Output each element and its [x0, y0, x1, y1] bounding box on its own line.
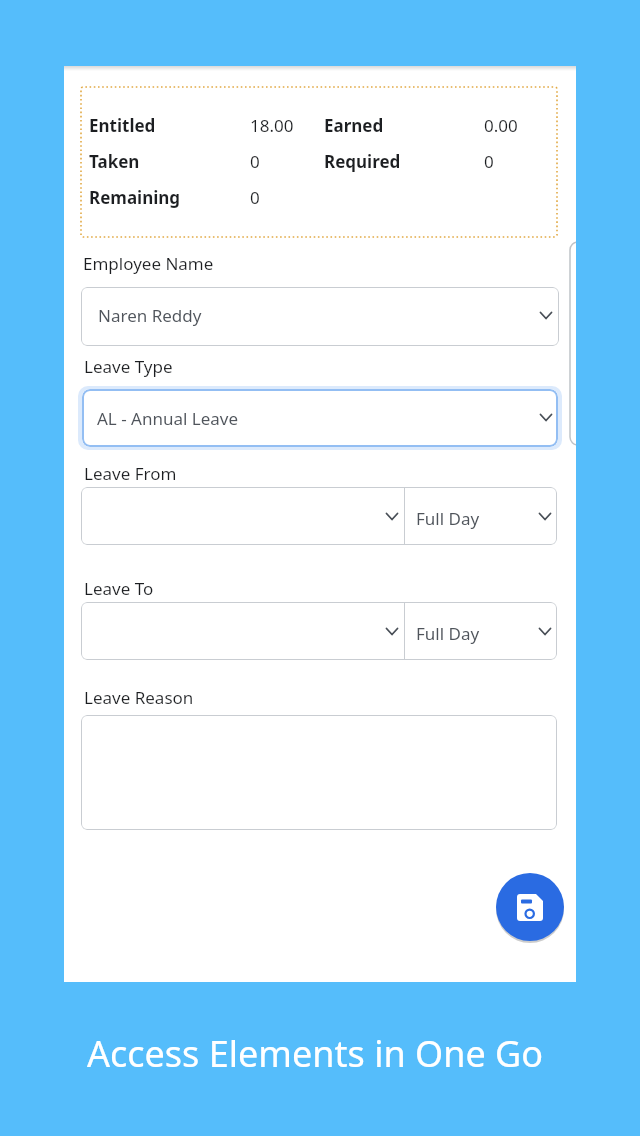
button[interactable] [496, 873, 564, 941]
button[interactable] [81, 715, 557, 830]
staticText: 0 [250, 150, 260, 173]
staticText: AL - Annual Leave [97, 407, 239, 430]
staticText: Entitled [89, 114, 156, 137]
staticText: Remaining [89, 186, 181, 209]
staticText: Leave From [84, 462, 177, 485]
button[interactable] [81, 602, 557, 660]
staticText: Access Elements in One Go [87, 1029, 544, 1078]
staticText: Leave Type [84, 355, 173, 378]
staticText: Required [324, 150, 401, 173]
staticText: Employee Name [83, 252, 214, 275]
staticText: 0.00 [484, 114, 518, 137]
button[interactable] [82, 389, 558, 447]
staticText: 0 [484, 150, 494, 173]
button[interactable] [81, 287, 559, 346]
staticText: Taken [89, 150, 140, 173]
staticText: Leave Reason [84, 686, 194, 709]
staticText: Leave To [84, 577, 154, 600]
staticText: 0 [250, 186, 260, 209]
staticText: Earned [324, 114, 384, 137]
staticText: Full Day [416, 622, 480, 645]
staticText: Full Day [416, 507, 480, 530]
button[interactable] [81, 487, 557, 545]
staticText: 18.00 [250, 114, 294, 137]
staticText: Naren Reddy [98, 304, 202, 327]
